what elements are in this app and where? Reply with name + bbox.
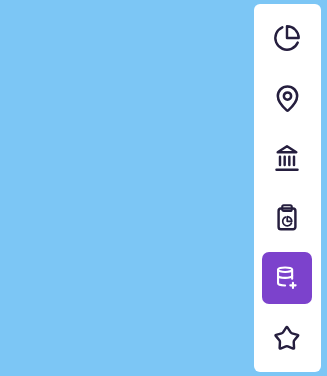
button[interactable]: Reports [262, 192, 312, 244]
button[interactable]: Add data [262, 252, 312, 304]
button[interactable]: Analytics [262, 12, 312, 64]
button[interactable]: Accounts [262, 132, 312, 184]
button[interactable]: Locations [262, 72, 312, 124]
button[interactable]: Favorites [262, 312, 312, 364]
